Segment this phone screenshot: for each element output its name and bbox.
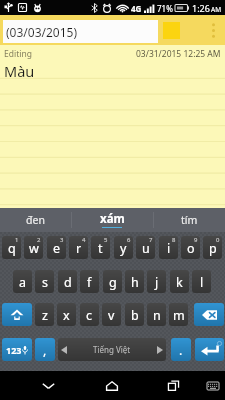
button[interactable]: f [80, 270, 99, 293]
button[interactable]: xám [71, 208, 153, 232]
button[interactable]: v [102, 303, 121, 326]
staticText: 1 [15, 236, 19, 244]
staticText: 123 [6, 344, 22, 356]
button[interactable]: s [35, 270, 54, 293]
staticText: i [167, 240, 171, 257]
button[interactable]: Backspace [194, 303, 224, 326]
staticText: 6 [127, 236, 131, 244]
staticText: 1:26 [192, 2, 210, 14]
staticText: s [42, 274, 48, 291]
staticText: h [131, 274, 139, 291]
staticText: tím [181, 213, 198, 227]
button[interactable]: i [159, 236, 178, 259]
staticText: đen [26, 213, 45, 227]
staticText: 0 [216, 236, 220, 244]
button[interactable]: k [170, 270, 189, 293]
button[interactable]: Hide keyboard [26, 371, 70, 400]
staticText: p [209, 240, 217, 257]
staticText: 2 [37, 236, 41, 244]
staticText: 03/31/2015 12:25 AM [136, 48, 221, 60]
staticText: u [142, 240, 150, 257]
button[interactable]: tím [153, 208, 225, 232]
button[interactable]: t [91, 236, 110, 259]
staticText: 9 [194, 236, 198, 244]
button[interactable]: j [147, 270, 166, 293]
staticText: t [98, 240, 103, 257]
staticText: 71% [157, 3, 173, 14]
button[interactable]: c [80, 303, 99, 326]
button[interactable]: z [35, 303, 54, 326]
staticText: o [187, 240, 195, 257]
button[interactable]: Enter [195, 338, 224, 361]
staticText: xám [100, 211, 125, 227]
button[interactable]: . [171, 338, 191, 361]
staticText: z [42, 307, 48, 324]
button[interactable]: o [181, 236, 200, 259]
staticText: d [64, 274, 72, 291]
staticText: Tiếng Việt [93, 344, 131, 355]
staticText: b [131, 307, 139, 324]
button[interactable]: x [57, 303, 76, 326]
button[interactable]: Choose input method [201, 371, 225, 400]
button[interactable]: l [192, 270, 211, 293]
button[interactable]: Editing [0, 45, 225, 208]
staticText: e [53, 240, 61, 257]
staticText: q [8, 240, 16, 257]
button[interactable]: r [69, 236, 88, 259]
button[interactable]: Recent apps [151, 371, 195, 400]
button[interactable]: w [24, 236, 43, 259]
button[interactable]: Home [90, 371, 134, 400]
button[interactable]: b [125, 303, 144, 326]
staticText: m [173, 307, 185, 324]
staticText: r [76, 240, 82, 257]
staticText: j [155, 274, 159, 291]
staticText: n [153, 307, 161, 324]
staticText: Màu [4, 61, 35, 81]
staticText: x [63, 307, 70, 324]
button[interactable]: g [103, 270, 122, 293]
button[interactable]: Numbers [2, 338, 32, 361]
button[interactable]: n [147, 303, 166, 326]
button[interactable]: Shift [2, 303, 32, 326]
button[interactable]: p [203, 236, 222, 259]
staticText: 5 [104, 236, 108, 244]
staticText: y [120, 240, 127, 257]
button[interactable]: u [136, 236, 155, 259]
button[interactable]: y [114, 236, 133, 259]
staticText: f [87, 274, 92, 291]
button[interactable]: đen [0, 208, 71, 232]
staticText: Editing [4, 48, 32, 60]
staticText: a [19, 274, 27, 291]
button[interactable]: q [2, 236, 21, 259]
button[interactable]: e [47, 236, 66, 259]
staticText: (03/03/2015) [6, 24, 78, 40]
staticText: 4 [82, 236, 86, 244]
staticText: 8 [172, 236, 176, 244]
button[interactable]: (03/03/2015) [3, 20, 158, 43]
staticText: 7 [149, 236, 153, 244]
staticText: 4G [131, 3, 142, 14]
button[interactable]: d [58, 270, 77, 293]
staticText: , [43, 342, 47, 359]
button[interactable]: h [125, 270, 144, 293]
staticText: v [108, 307, 115, 324]
staticText: . [179, 342, 183, 359]
button[interactable]: More options [201, 15, 225, 45]
staticText: k [176, 274, 183, 291]
button[interactable]: a [13, 270, 32, 293]
staticText: 3 [60, 236, 64, 244]
staticText: g [109, 274, 117, 291]
staticText: w [29, 240, 39, 257]
button[interactable]: Tiếng Việt [58, 338, 166, 361]
button[interactable]: , [35, 338, 55, 361]
staticText: l [200, 274, 204, 291]
staticText: c [86, 307, 93, 324]
button[interactable]: m [169, 303, 188, 326]
staticText: AM [211, 5, 222, 14]
